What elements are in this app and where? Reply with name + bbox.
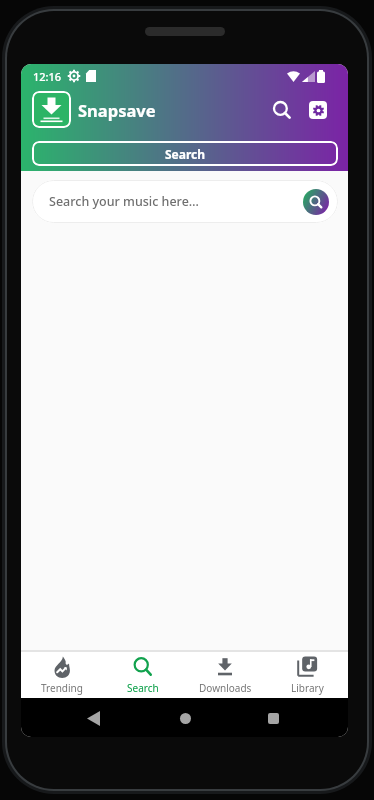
button[interactable] <box>246 704 301 732</box>
button[interactable]: Search <box>102 652 184 698</box>
staticText: Downloads <box>199 681 252 695</box>
staticText: Search <box>165 146 206 162</box>
button[interactable] <box>303 189 329 215</box>
button[interactable]: Trending <box>21 652 102 698</box>
staticText: Trending <box>41 681 83 695</box>
button[interactable]: Library <box>266 652 348 698</box>
staticText: Search your music here… <box>49 193 199 210</box>
button[interactable] <box>267 95 297 125</box>
button[interactable] <box>66 704 121 732</box>
button[interactable] <box>158 704 213 732</box>
button[interactable]: Downloads <box>184 652 266 698</box>
staticText: Snapsave <box>78 99 156 121</box>
button[interactable] <box>309 101 327 119</box>
staticText: 12:16 <box>33 69 62 84</box>
staticText: Library <box>291 681 324 695</box>
button[interactable]: Search <box>32 141 338 166</box>
staticText: Search <box>127 681 159 695</box>
button[interactable]: Search your music here… <box>32 180 338 223</box>
